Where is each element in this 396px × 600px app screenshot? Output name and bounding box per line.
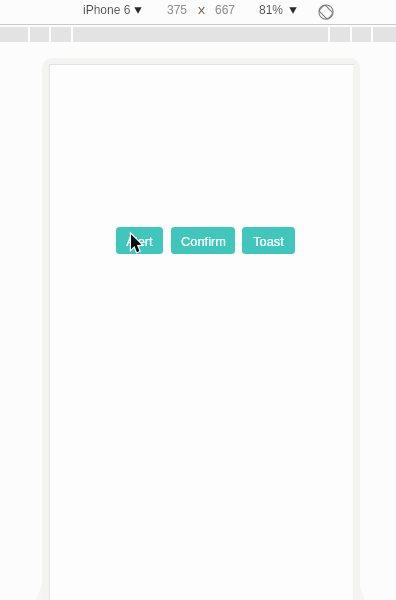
button[interactable]: Alert bbox=[116, 227, 163, 254]
staticText: iPhone 6 bbox=[83, 3, 131, 16]
staticText: Alert bbox=[126, 234, 153, 248]
staticText: 81% bbox=[259, 3, 284, 16]
staticText: 667 bbox=[215, 3, 236, 16]
button[interactable]: iPhone 6 bbox=[81, 3, 144, 16]
button[interactable]: 81% bbox=[257, 3, 299, 16]
button[interactable]: Toast bbox=[242, 227, 295, 254]
staticText: Confirm bbox=[181, 234, 226, 248]
button[interactable]: Confirm bbox=[171, 227, 235, 254]
staticText: 375 bbox=[167, 3, 188, 16]
button[interactable]: Rotate viewport bbox=[316, 2, 336, 22]
staticText: Toast bbox=[253, 234, 284, 248]
